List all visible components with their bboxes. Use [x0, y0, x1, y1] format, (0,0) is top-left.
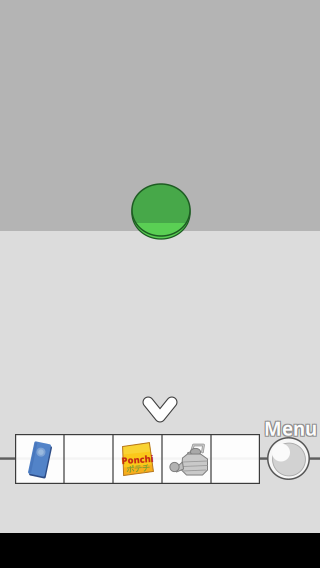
button[interactable]: Empty slot — [211, 434, 260, 484]
button[interactable]: Green button — [131, 182, 193, 242]
button[interactable]: Blue book — [15, 434, 64, 484]
staticText: Menu — [265, 417, 318, 442]
button[interactable]: Watering can — [162, 434, 211, 484]
staticText: Menu — [263, 415, 316, 440]
staticText: Ponchi — [121, 453, 153, 466]
button[interactable]: Empty slot — [64, 434, 113, 484]
staticText: Menu — [265, 415, 318, 440]
staticText: Menu — [263, 417, 316, 442]
staticText: ポテチ — [125, 464, 149, 473]
button[interactable]: Snack bag — [113, 434, 162, 484]
button[interactable]: Menu — [264, 416, 318, 479]
staticText: Menu — [264, 416, 317, 441]
